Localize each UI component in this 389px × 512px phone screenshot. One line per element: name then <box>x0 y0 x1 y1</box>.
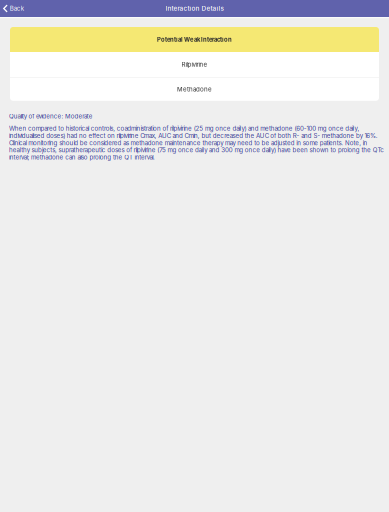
staticText: interval; methadone can also prolong the… <box>9 154 155 161</box>
button[interactable]: Rilpivirine <box>10 52 379 77</box>
staticText: Clinical monitoring should be considered… <box>9 139 368 147</box>
staticText: Potential Weak Interaction <box>157 36 232 43</box>
staticText: Rilpivirine <box>181 61 207 68</box>
staticText: Methadone <box>177 86 212 93</box>
staticText: Quality of evidence: Moderate <box>9 113 93 120</box>
staticText: Interaction Details <box>165 5 223 12</box>
staticText: When compared to historical controls, co… <box>9 125 359 132</box>
staticText: Back <box>10 5 24 12</box>
button[interactable]: Methadone <box>10 78 379 101</box>
button[interactable]: Back <box>0 0 29 17</box>
staticText: healthy subjects, supratherapeutic doses… <box>9 146 384 154</box>
staticText: individualised doses) had no effect on r… <box>9 132 378 139</box>
